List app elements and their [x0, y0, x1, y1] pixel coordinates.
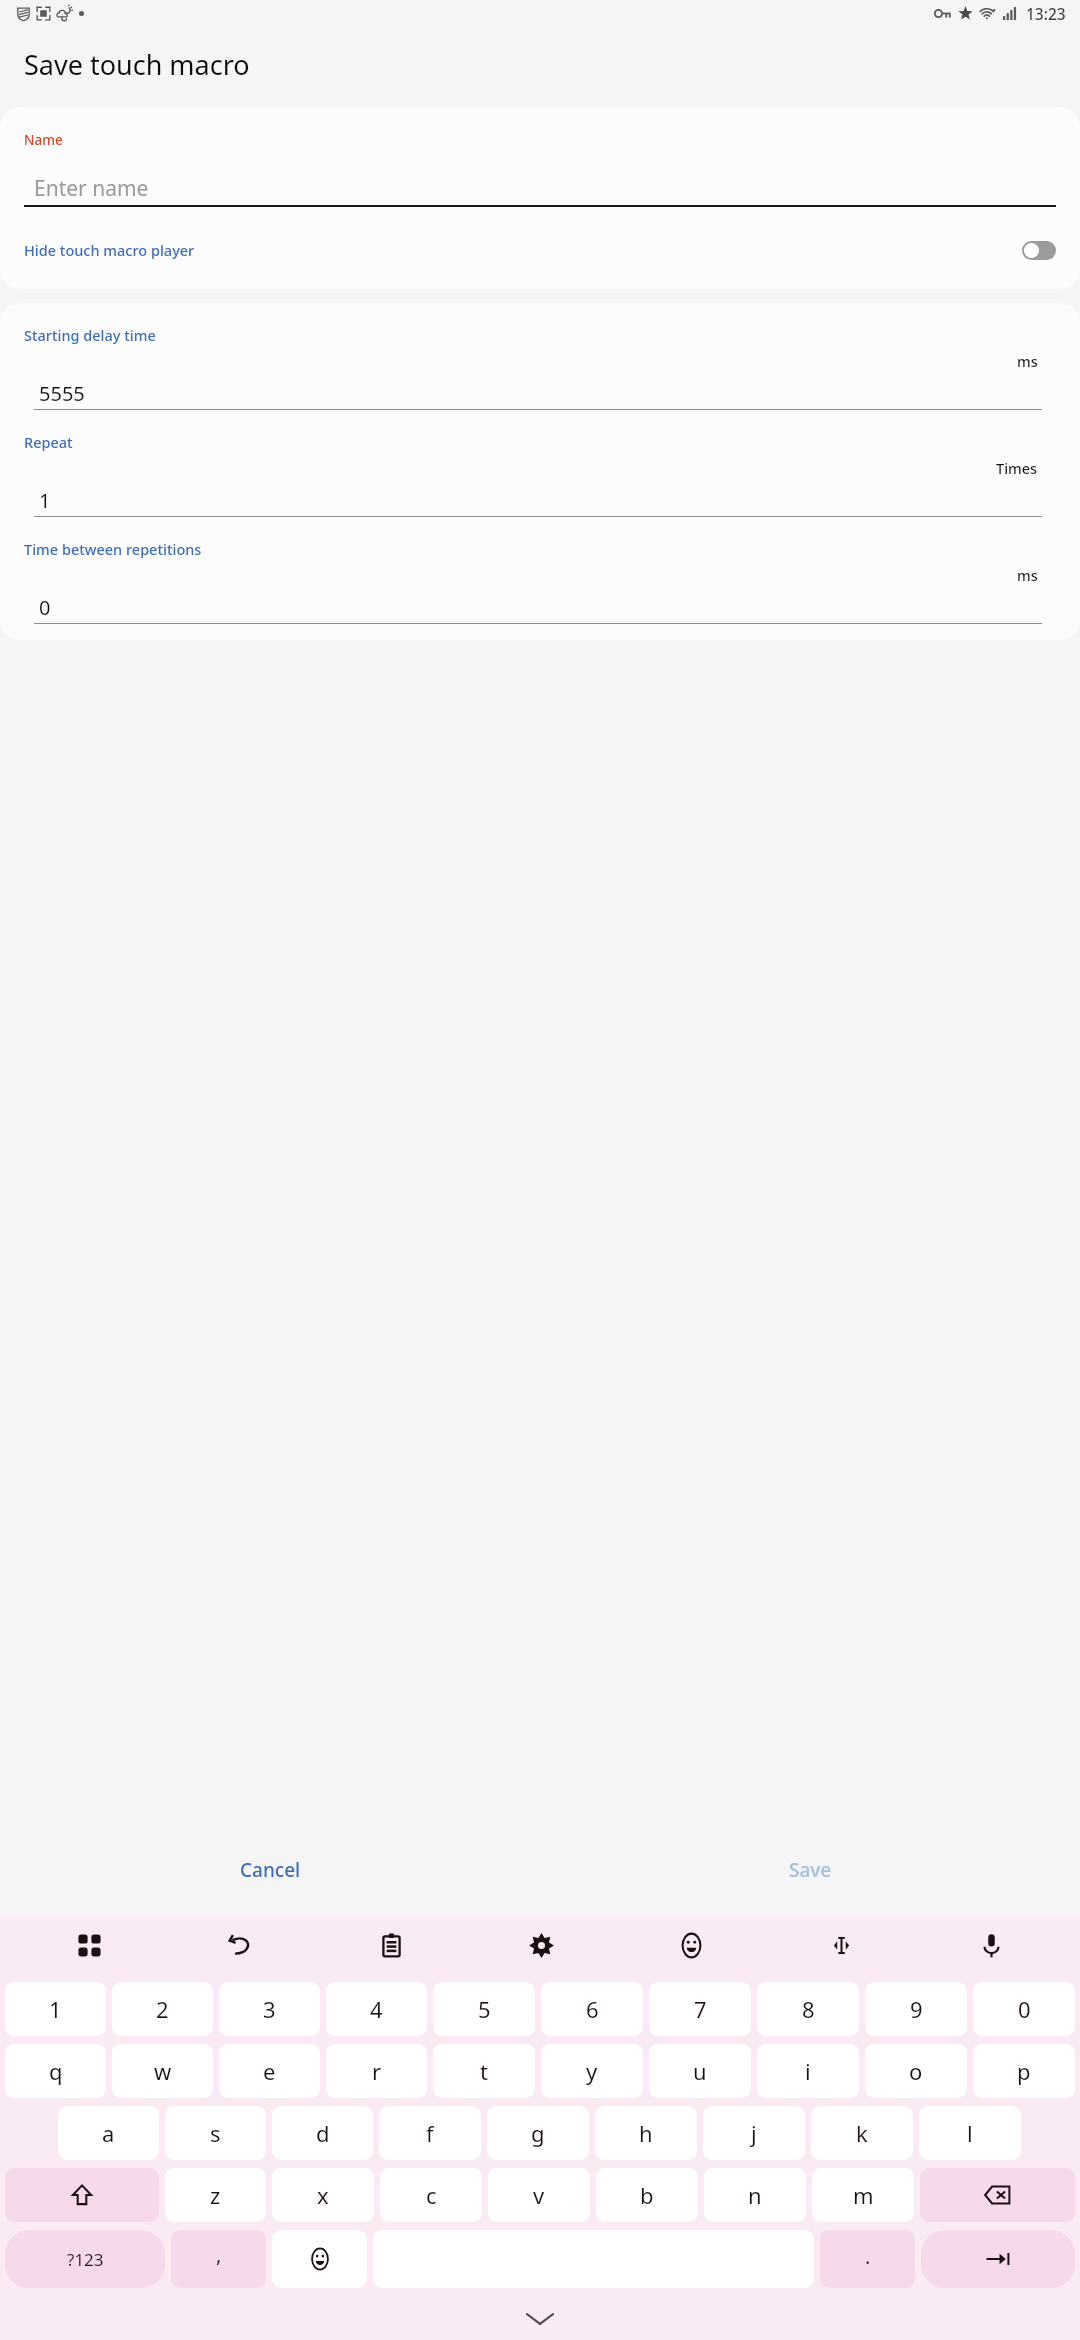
staticText: y	[586, 2056, 598, 2086]
button[interactable]: o	[865, 2044, 967, 2098]
button[interactable]: g	[487, 2106, 589, 2160]
button[interactable]: 9	[865, 1982, 967, 2036]
staticText: Time between repetitions	[24, 539, 202, 559]
button[interactable]: y	[541, 2044, 643, 2098]
button[interactable]: i	[757, 2044, 859, 2098]
button[interactable]: e	[219, 2044, 320, 2098]
button[interactable]: 4	[326, 1982, 427, 2036]
button[interactable]: a	[58, 2106, 159, 2160]
staticText: h	[639, 2118, 653, 2148]
button[interactable]: Emoji	[272, 2230, 367, 2288]
button[interactable]: z	[165, 2168, 266, 2222]
staticText: z	[210, 2180, 221, 2210]
staticText: x	[317, 2180, 329, 2210]
button[interactable]: Save	[540, 1824, 1080, 1916]
staticText: u	[693, 2056, 707, 2086]
button[interactable]: 6	[541, 1982, 643, 2036]
staticText: s	[210, 2118, 221, 2148]
staticText: 0	[1018, 1994, 1031, 2024]
staticText: g	[531, 2118, 545, 2148]
staticText: Times	[996, 458, 1038, 478]
button[interactable]: 3	[219, 1982, 320, 2036]
staticText: Hide touch macro player	[24, 240, 195, 260]
button[interactable]: b	[596, 2168, 698, 2222]
staticText: n	[748, 2180, 762, 2210]
button[interactable]: 8	[757, 1982, 859, 2036]
button[interactable]: ,	[171, 2230, 266, 2288]
button[interactable]: Cancel	[0, 1824, 540, 1916]
button[interactable]: Shift	[5, 2168, 159, 2222]
staticText: .	[865, 2243, 871, 2270]
button[interactable]: j	[703, 2106, 805, 2160]
staticText: 1	[49, 1994, 62, 2024]
staticText: i	[805, 2056, 811, 2086]
staticText: 2	[156, 1994, 169, 2024]
button[interactable]: d	[272, 2106, 373, 2160]
button[interactable]: c	[380, 2168, 482, 2222]
button[interactable]: Enter name	[24, 171, 1056, 205]
button[interactable]: 1	[34, 484, 1042, 516]
staticText: Enter name	[34, 174, 149, 203]
staticText: m	[853, 2180, 874, 2210]
button[interactable]: l	[919, 2106, 1021, 2160]
staticText: Cancel	[240, 1857, 301, 1883]
staticText: Repeat	[24, 432, 73, 452]
staticText: Save	[789, 1857, 832, 1883]
button[interactable]: Emoji	[616, 1916, 766, 1974]
button[interactable]: Cursor control	[766, 1916, 916, 1974]
button[interactable]: Apps	[14, 1916, 165, 1974]
button[interactable]: h	[595, 2106, 697, 2160]
staticText: l	[967, 2118, 973, 2148]
staticText: 4	[370, 1994, 383, 2024]
button[interactable]: t	[433, 2044, 535, 2098]
button[interactable]: Hide touch macro player	[24, 227, 1056, 273]
button[interactable]: 5	[433, 1982, 535, 2036]
button[interactable]: r	[326, 2044, 427, 2098]
button[interactable]: Undo	[165, 1916, 316, 1974]
button[interactable]: Settings	[466, 1916, 616, 1974]
staticText: q	[49, 2056, 63, 2086]
staticText: 1	[39, 487, 51, 514]
button[interactable]: f	[379, 2106, 481, 2160]
button[interactable]: Hide keyboard	[527, 2312, 553, 2326]
button[interactable]: n	[704, 2168, 806, 2222]
button[interactable]: 7	[649, 1982, 751, 2036]
staticText: w	[154, 2056, 172, 2086]
button[interactable]: 0	[973, 1982, 1075, 2036]
staticText: j	[751, 2118, 757, 2148]
button[interactable]: u	[649, 2044, 751, 2098]
button[interactable]: s	[165, 2106, 266, 2160]
staticText: 0	[39, 594, 51, 621]
staticText: ?123	[67, 2248, 104, 2271]
button[interactable]: 5555	[34, 377, 1042, 409]
button[interactable]: Clipboard	[316, 1916, 466, 1974]
staticText: b	[640, 2180, 654, 2210]
button[interactable]: m	[812, 2168, 914, 2222]
staticText: t	[480, 2056, 488, 2086]
button[interactable]: ?123	[5, 2230, 165, 2288]
button[interactable]: x	[272, 2168, 374, 2222]
staticText: 3	[263, 1994, 276, 2024]
staticText: c	[426, 2180, 437, 2210]
staticText: k	[856, 2118, 868, 2148]
staticText: ,	[216, 2241, 222, 2268]
button[interactable]: p	[973, 2044, 1075, 2098]
button[interactable]: k	[811, 2106, 913, 2160]
staticText: e	[263, 2056, 276, 2086]
staticText: Save touch macro	[24, 46, 250, 83]
button[interactable]: Backspace	[920, 2168, 1075, 2222]
staticText: ms	[1017, 351, 1038, 371]
button[interactable]: v	[488, 2168, 590, 2222]
button[interactable]: 1	[5, 1982, 106, 2036]
staticText: ms	[1017, 565, 1038, 585]
button[interactable]: 2	[112, 1982, 213, 2036]
button[interactable]: Next field	[921, 2230, 1075, 2288]
button[interactable]: .	[820, 2230, 915, 2288]
button[interactable]: 0	[34, 591, 1042, 623]
button[interactable]: Voice input	[916, 1916, 1066, 1974]
button[interactable]: q	[5, 2044, 106, 2098]
staticText: 13:23	[1026, 3, 1066, 24]
button[interactable]: w	[112, 2044, 213, 2098]
staticText: 5	[478, 1994, 491, 2024]
